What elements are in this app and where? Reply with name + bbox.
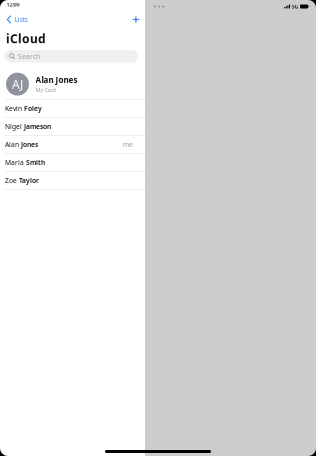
button[interactable]: Zoe: [0, 172, 145, 190]
button[interactable]: Alan: [0, 136, 145, 154]
staticText: Kevin: [5, 104, 24, 113]
staticText: Zoe: [5, 176, 19, 185]
staticText: Taylor: [19, 176, 39, 185]
staticText: Maria: [5, 158, 26, 167]
staticText: Jones: [21, 140, 38, 149]
button[interactable]: Lists: [0, 12, 33, 27]
staticText: 5G: [291, 3, 298, 10]
button[interactable]: Multitasking controls: [145, 0, 170, 13]
staticText: Smith: [26, 158, 45, 167]
staticText: Alan: [5, 140, 21, 149]
staticText: Nigel: [5, 122, 24, 131]
staticText: Foley: [24, 104, 42, 113]
button[interactable]: Search: [0, 50, 145, 63]
staticText: Jameson: [24, 122, 51, 131]
button[interactable]: Nigel: [0, 118, 145, 136]
staticText: Alan Jones: [35, 75, 77, 85]
button[interactable]: Kevin: [0, 100, 145, 118]
staticText: me: [123, 140, 133, 149]
staticText: AJ: [12, 76, 23, 92]
staticText: My Card: [35, 86, 55, 94]
staticText: 12:00: [7, 1, 20, 8]
staticText: Search: [18, 52, 40, 61]
button[interactable]: AJ: [0, 69, 145, 100]
button[interactable]: Maria: [0, 154, 145, 172]
staticText: Lists: [15, 15, 28, 24]
button[interactable]: Add contact: [127, 12, 145, 27]
staticText: iCloud: [6, 30, 46, 46]
